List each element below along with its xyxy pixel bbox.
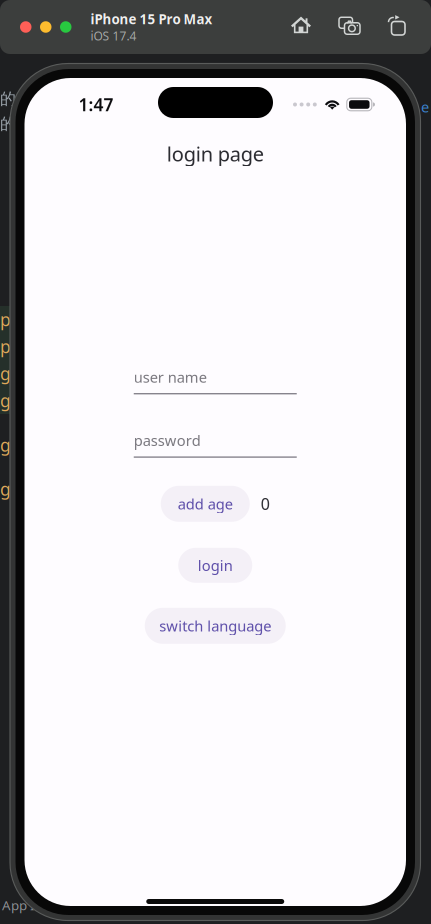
staticText: p xyxy=(0,335,11,358)
staticText: 0 xyxy=(261,493,270,514)
button[interactable]: Screenshot xyxy=(339,18,360,36)
staticText: e xyxy=(421,97,429,116)
button[interactable]: add age xyxy=(161,486,250,522)
staticText: g xyxy=(0,433,11,456)
staticText: App In xyxy=(2,896,43,914)
staticText: user name xyxy=(134,367,207,387)
staticText: 的 xyxy=(0,89,16,109)
button[interactable]: Home xyxy=(291,18,311,36)
staticText: iOS 17.4 xyxy=(90,28,136,44)
staticText: 的 xyxy=(0,114,16,134)
button[interactable]: login xyxy=(178,548,252,583)
staticText: 1:47 xyxy=(78,93,113,116)
staticText: iPhone 15 Pro Max xyxy=(90,10,212,28)
staticText: password xyxy=(134,431,201,450)
staticText: g xyxy=(0,477,11,500)
staticText: g xyxy=(0,362,11,385)
staticText: p xyxy=(0,308,11,331)
staticText: add age xyxy=(178,494,233,514)
staticText: g xyxy=(0,389,11,412)
staticText: switch language xyxy=(159,616,271,636)
staticText: login page xyxy=(167,140,264,167)
button[interactable]: Rotate device xyxy=(387,17,406,36)
staticText: login xyxy=(198,556,233,575)
button[interactable]: switch language xyxy=(145,608,286,644)
